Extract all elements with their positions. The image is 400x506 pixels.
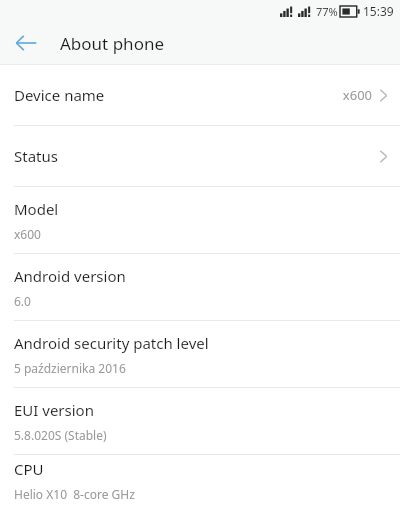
staticText: 5.8.020S (Stable) <box>14 427 107 443</box>
button[interactable]: Android security patch level <box>0 321 400 387</box>
staticText: Device name <box>14 85 342 105</box>
staticText: x600 <box>342 86 372 104</box>
button[interactable]: Status <box>0 126 400 186</box>
staticText: About phone <box>60 32 165 55</box>
staticText: Status <box>14 146 379 166</box>
staticText: 5 października 2016 <box>14 360 126 376</box>
staticText: 77% <box>316 4 338 19</box>
staticText: Helio X10 8-core GHz <box>14 486 135 502</box>
button[interactable]: Model <box>0 187 400 253</box>
button[interactable]: EUI version <box>0 388 400 454</box>
staticText: x600 <box>14 226 41 242</box>
button[interactable]: Back <box>6 23 46 63</box>
staticText: Model <box>14 199 59 219</box>
staticText: CPU <box>14 459 44 479</box>
staticText: Android security patch level <box>14 333 209 353</box>
staticText: 15:39 <box>363 3 394 19</box>
button[interactable]: CPU <box>0 455 400 506</box>
staticText: Android version <box>14 266 126 286</box>
button[interactable]: Android version <box>0 254 400 320</box>
button[interactable]: Device name <box>0 65 400 125</box>
staticText: EUI version <box>14 400 94 420</box>
staticText: 6.0 <box>14 293 31 309</box>
